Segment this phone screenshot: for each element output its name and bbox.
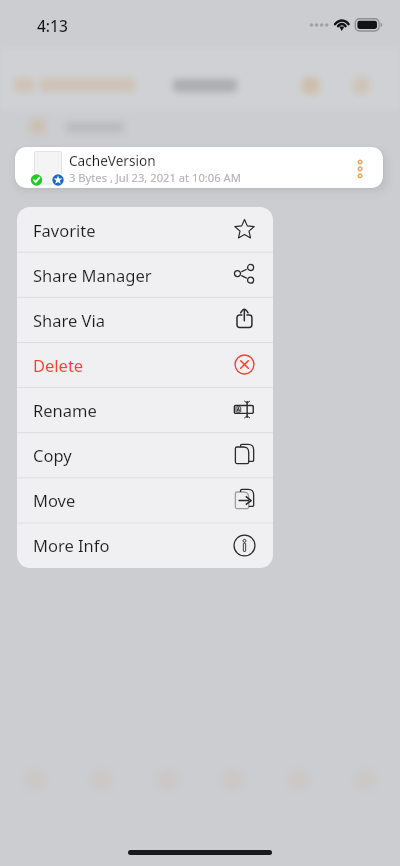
button[interactable]: More Info <box>17 522 273 568</box>
button[interactable]: Favorite <box>17 207 273 252</box>
staticText: 3 Bytes , Jul 23, 2021 at 10:06 AM <box>69 170 241 185</box>
staticText: CacheVersion <box>69 151 156 170</box>
staticText: Rename <box>33 399 233 421</box>
staticText: Move <box>33 489 233 511</box>
button[interactable]: Delete <box>17 342 273 387</box>
button[interactable]: Rename <box>17 387 273 432</box>
staticText: 4:13 <box>37 15 68 36</box>
button[interactable]: Copy <box>17 432 273 477</box>
staticText: Delete <box>33 354 233 376</box>
staticText: Copy <box>33 444 233 466</box>
staticText: Share Via <box>33 309 233 331</box>
staticText: Share Manager <box>33 264 233 286</box>
button[interactable]: Move <box>17 477 273 522</box>
button[interactable]: CacheVersion <box>15 147 383 188</box>
button[interactable]: Share Manager <box>17 252 273 297</box>
staticText: Favorite <box>33 219 233 241</box>
button[interactable]: Share Via <box>17 297 273 342</box>
staticText: More Info <box>33 534 233 556</box>
